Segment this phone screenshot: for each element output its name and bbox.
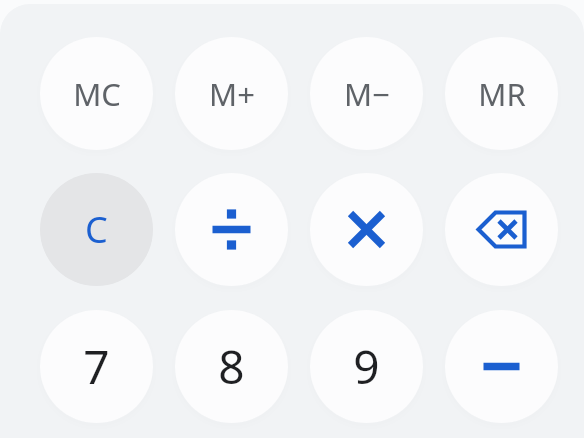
button[interactable]: Backspace [445,173,558,286]
button[interactable]: 8 [175,310,288,423]
button[interactable]: MR [445,37,558,150]
staticText: 9 [353,335,380,398]
button[interactable]: Multiply [310,173,423,286]
staticText: M− [344,73,390,115]
staticText: MR [478,73,526,115]
staticText: 8 [218,335,245,398]
staticText: C [85,205,108,254]
staticText: MC [73,73,121,115]
button[interactable]: M+ [175,37,288,150]
button[interactable]: MC [40,37,153,150]
button[interactable]: 9 [310,310,423,423]
button[interactable]: Minus [445,310,558,423]
button[interactable]: C [40,173,153,286]
staticText: M+ [209,73,255,115]
staticText: 7 [83,335,110,398]
button[interactable]: Divide [175,173,288,286]
button[interactable]: 7 [40,310,153,423]
button[interactable]: M− [310,37,423,150]
